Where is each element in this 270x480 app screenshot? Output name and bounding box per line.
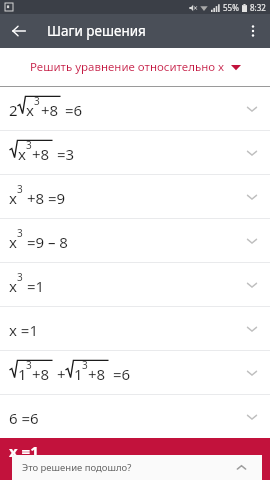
button[interactable]: Это решение подошло? bbox=[12, 455, 262, 480]
staticText: x bbox=[9, 188, 17, 208]
button[interactable]: x bbox=[0, 219, 270, 262]
staticText: x bbox=[18, 144, 26, 164]
staticText: +8 =9 bbox=[23, 188, 66, 208]
staticText: 2 bbox=[9, 100, 18, 120]
staticText: 8:32 bbox=[250, 2, 266, 13]
staticText: =6 bbox=[109, 364, 131, 384]
staticText: +8 bbox=[41, 100, 59, 120]
staticText: 1 bbox=[74, 364, 83, 384]
staticText: 3 bbox=[26, 358, 32, 372]
button[interactable]: x bbox=[0, 131, 270, 174]
staticText: 3 bbox=[34, 94, 40, 108]
staticText: 3 bbox=[26, 138, 32, 152]
button[interactable]: 1 bbox=[0, 351, 270, 394]
staticText: 3 bbox=[17, 182, 23, 196]
staticText: =3 bbox=[53, 144, 75, 164]
staticText: =9 – 8 bbox=[23, 232, 68, 252]
staticText: Решить уравнение относительно x bbox=[30, 59, 225, 75]
staticText: x =1 bbox=[9, 441, 39, 461]
staticText: 3 bbox=[82, 358, 88, 372]
staticText: 3 bbox=[17, 226, 23, 240]
button[interactable]: 2 bbox=[0, 87, 270, 130]
staticText: 1 bbox=[18, 364, 27, 384]
button[interactable]: x bbox=[0, 263, 270, 306]
staticText: + bbox=[53, 364, 66, 384]
staticText: x bbox=[26, 100, 34, 120]
staticText: Шаги решения bbox=[47, 22, 146, 40]
staticText: +8 bbox=[88, 364, 106, 384]
staticText: +8 bbox=[32, 144, 50, 164]
staticText: Это решение подошло? bbox=[22, 461, 132, 474]
staticText: x bbox=[9, 232, 17, 252]
staticText: 6 =6 bbox=[9, 408, 39, 428]
button[interactable]: 6 =6 bbox=[0, 395, 270, 438]
button[interactable]: Решить уравнение относительно x bbox=[0, 48, 270, 86]
staticText: =6 bbox=[61, 100, 83, 120]
button[interactable]: x =1 bbox=[0, 307, 270, 350]
staticText: 3 bbox=[17, 270, 23, 284]
staticText: x bbox=[9, 276, 17, 296]
staticText: =1 bbox=[23, 276, 45, 296]
button[interactable]: Back bbox=[5, 17, 33, 45]
button[interactable]: More options bbox=[239, 17, 267, 45]
staticText: +8 bbox=[32, 364, 50, 384]
staticText: 55% bbox=[223, 2, 239, 13]
button[interactable]: x bbox=[0, 175, 270, 218]
staticText: x =1 bbox=[9, 320, 38, 340]
